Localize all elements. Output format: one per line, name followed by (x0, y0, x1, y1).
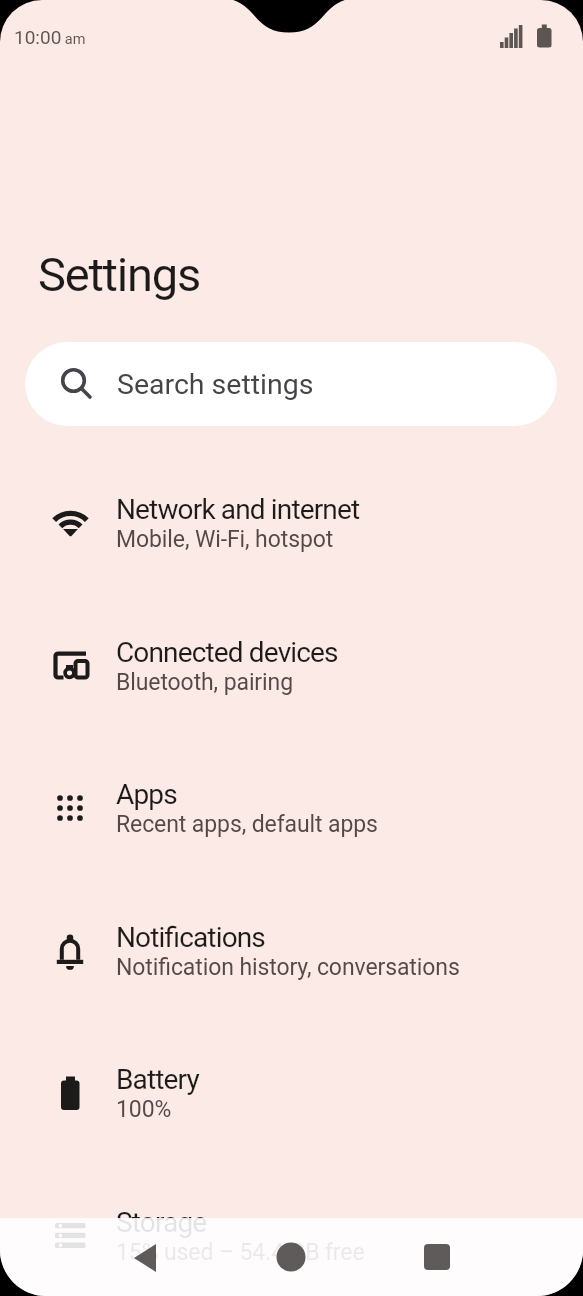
staticText: Mobile, Wi-Fi, hotspot (116, 526, 334, 553)
button[interactable]: Battery (0, 1022, 583, 1164)
staticText: Settings (38, 247, 201, 302)
staticText: Storage (116, 1206, 207, 1239)
staticText: 10:00 am (14, 26, 86, 48)
button[interactable]: Storage (0, 1165, 583, 1296)
button[interactable] (255, 1221, 327, 1293)
staticText: Recent apps, default apps (116, 811, 378, 838)
staticText: Apps (116, 778, 177, 811)
staticText: Search settings (117, 368, 314, 401)
staticText: 100% (116, 1096, 172, 1123)
button[interactable]: Connected devices (0, 595, 583, 737)
staticText: Network and internet (116, 493, 360, 526)
staticText: Notification history, conversations (116, 954, 460, 981)
button[interactable] (401, 1221, 473, 1293)
staticText: Notifications (116, 921, 265, 954)
button[interactable] (109, 1221, 181, 1293)
button[interactable]: Search settings (25, 342, 557, 426)
button[interactable]: Network and internet (0, 452, 583, 594)
staticText: Bluetooth, pairing (116, 669, 293, 696)
staticText: Connected devices (116, 636, 338, 669)
staticText: 15% used – 54.4 GB free (116, 1239, 365, 1266)
button[interactable]: Apps (0, 737, 583, 879)
staticText: Battery (116, 1063, 199, 1096)
button[interactable]: Notifications (0, 880, 583, 1022)
